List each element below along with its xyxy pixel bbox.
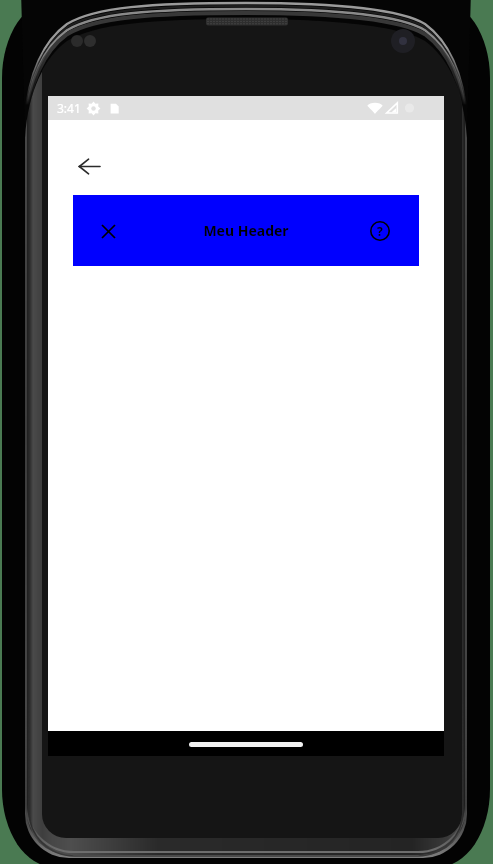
staticText: 3:41 bbox=[57, 100, 81, 116]
button[interactable]: Back bbox=[77, 154, 101, 178]
staticText: ? bbox=[377, 223, 383, 239]
button[interactable]: Help bbox=[367, 218, 393, 244]
button[interactable]: Close bbox=[95, 218, 121, 244]
staticText: Meu Header bbox=[203, 221, 289, 240]
